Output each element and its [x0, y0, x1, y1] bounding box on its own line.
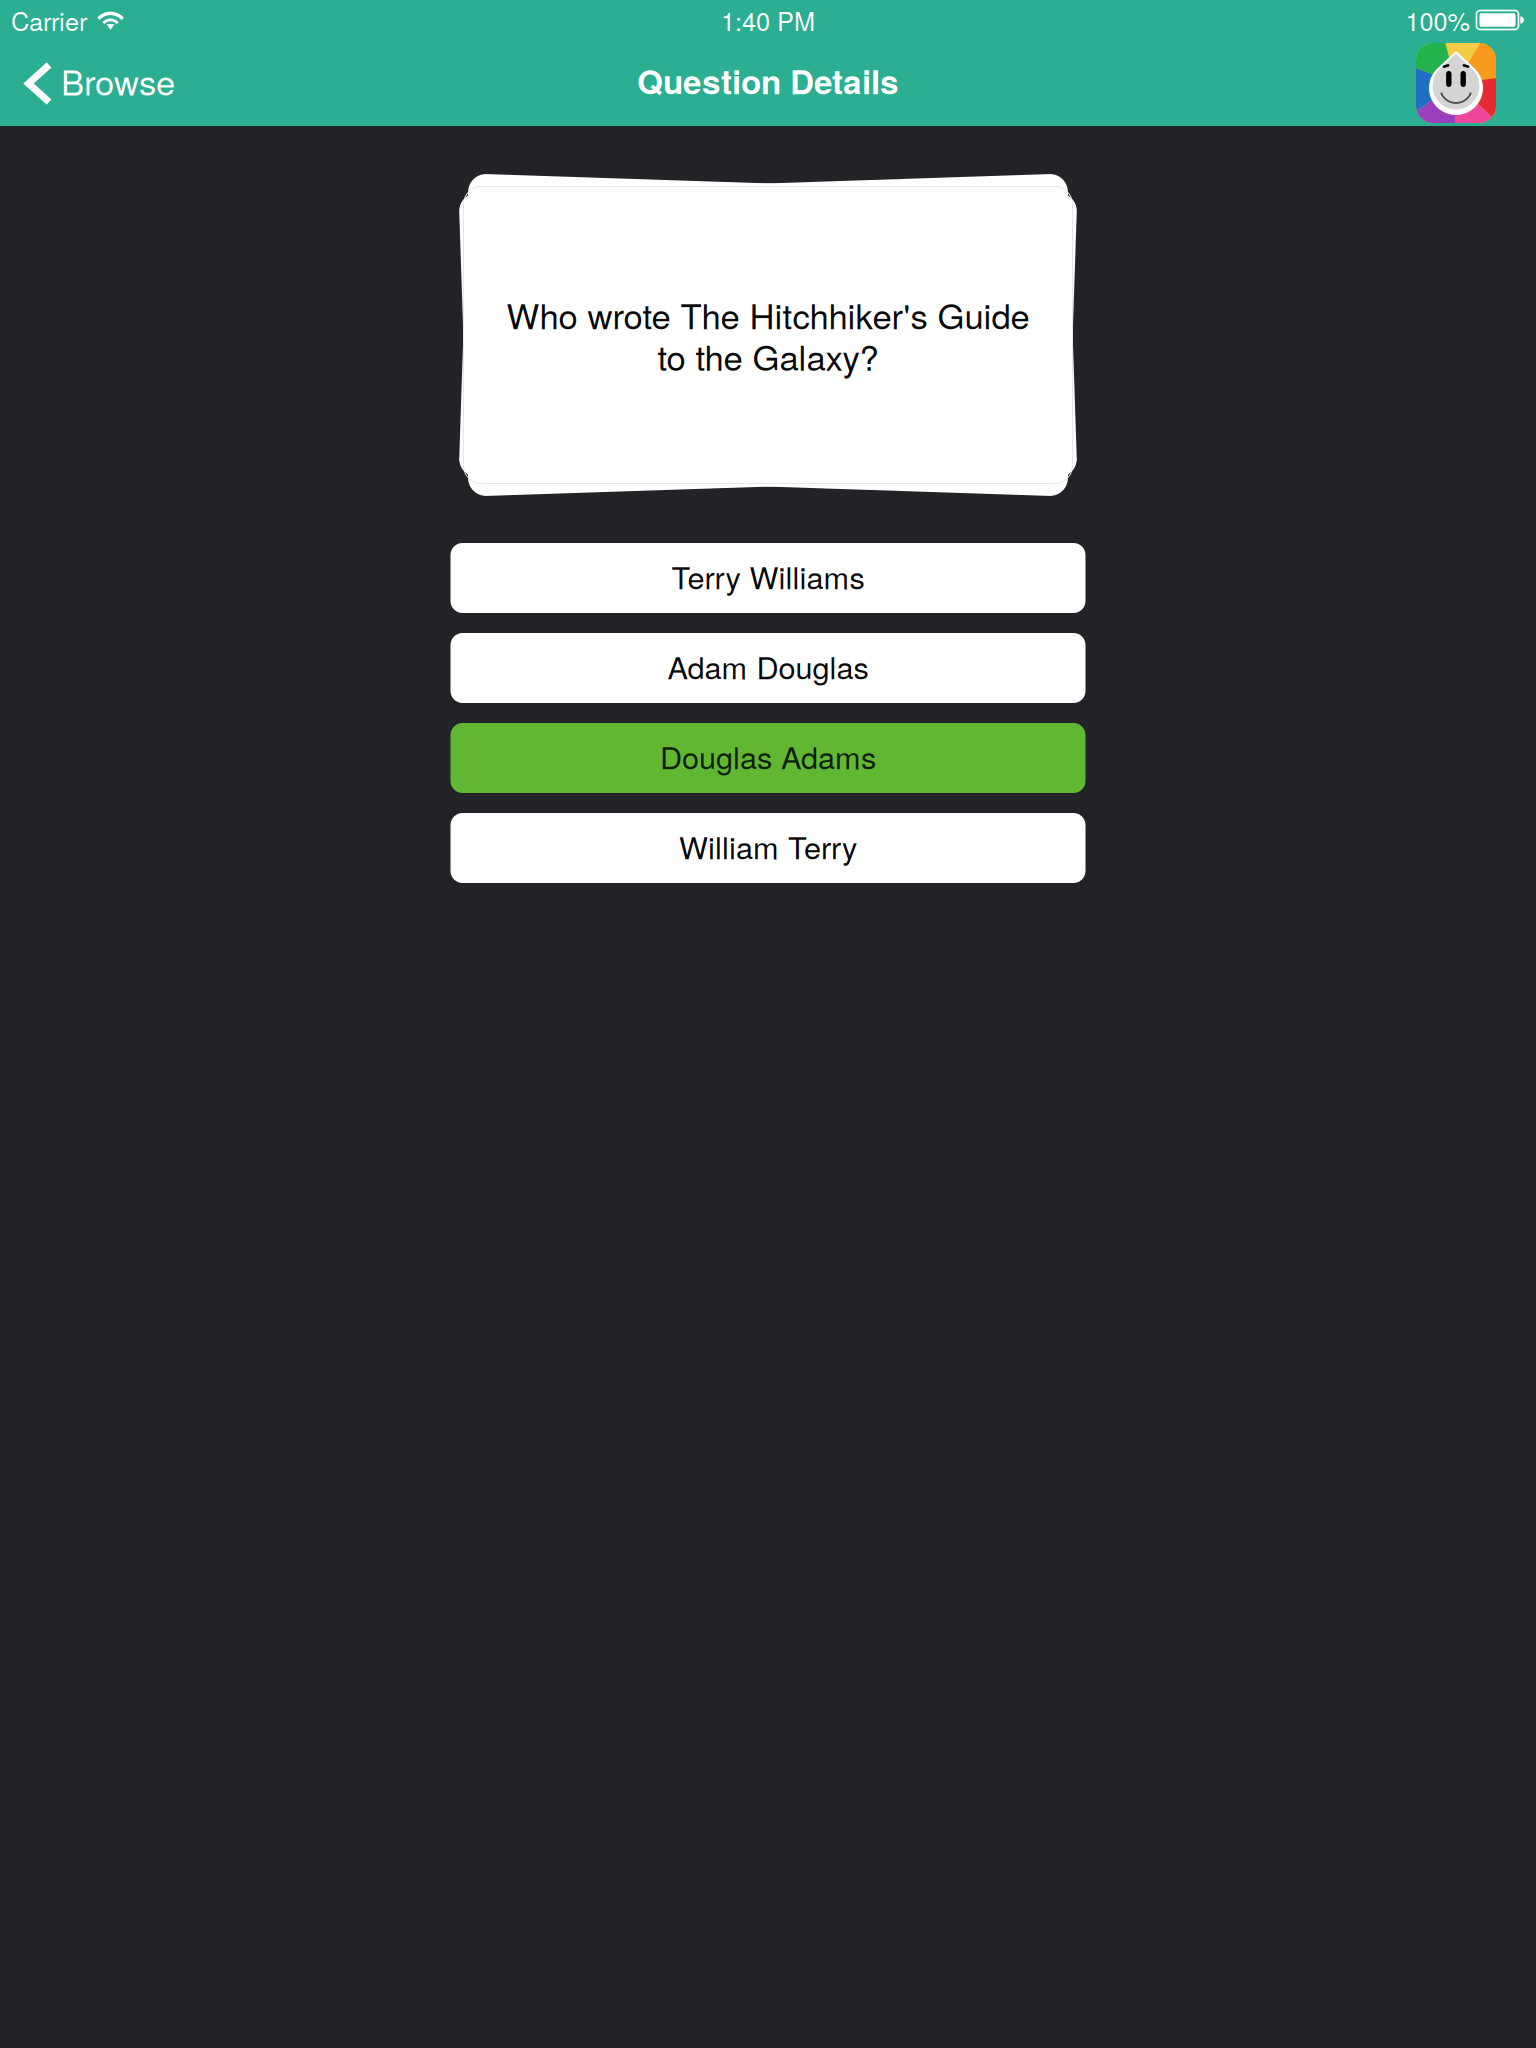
staticText: William Terry — [679, 824, 857, 868]
staticText: Carrier — [11, 2, 87, 38]
button[interactable]: Terry Williams — [450, 543, 1085, 613]
button[interactable]: Trivia Crack — [1416, 43, 1496, 123]
button[interactable]: Douglas Adams — [450, 723, 1085, 793]
staticText: Terry Williams — [671, 554, 864, 598]
button[interactable]: Adam Douglas — [450, 633, 1085, 703]
staticText: to the Galaxy? — [657, 331, 878, 381]
button[interactable]: William Terry — [450, 813, 1085, 883]
staticText: Question Details — [637, 57, 899, 104]
staticText: 100% — [1405, 2, 1470, 38]
staticText: Browse — [61, 56, 175, 105]
staticText: Adam Douglas — [667, 644, 868, 688]
staticText: 1:40 PM — [721, 2, 815, 38]
button[interactable]: Browse — [0, 46, 175, 120]
staticText: Who wrote The Hitchhiker's Guide — [506, 289, 1029, 339]
staticText: Douglas Adams — [660, 734, 876, 778]
